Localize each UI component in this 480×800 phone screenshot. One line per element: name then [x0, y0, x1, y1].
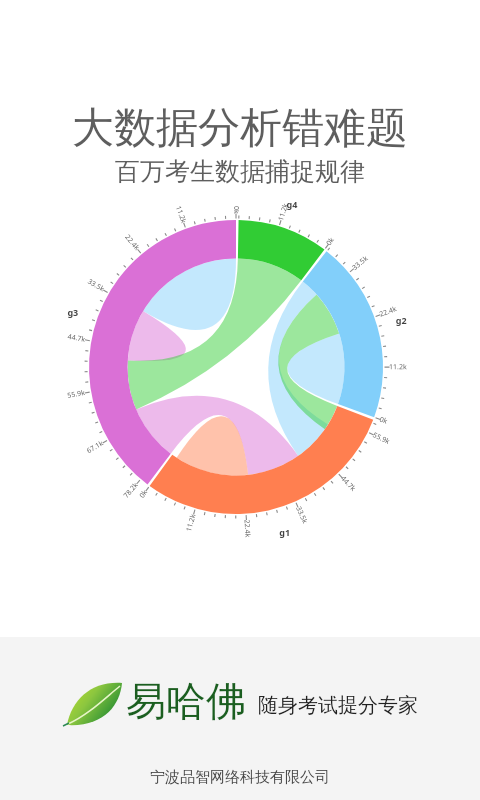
staticText: 易哈佛	[126, 676, 246, 726]
staticText: 百万考生数据捕捉规律	[115, 156, 365, 187]
staticText: 随身考试提分专家	[258, 693, 418, 718]
staticText: 宁波品智网络科技有限公司	[150, 768, 330, 787]
staticText: 大数据分析错难题	[72, 102, 408, 155]
